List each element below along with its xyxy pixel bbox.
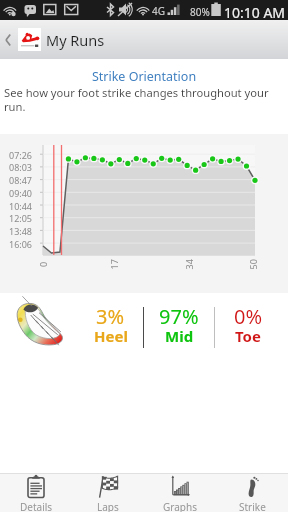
staticText: Details <box>20 500 53 512</box>
button[interactable]: Graphs <box>144 473 216 512</box>
staticText: Mid <box>165 326 194 346</box>
staticText: 0% <box>234 303 263 330</box>
staticText: 10:10 AM <box>224 3 286 22</box>
staticText: 17 <box>107 258 119 269</box>
staticText: 3% <box>96 303 125 330</box>
staticText: 16:06 <box>9 238 33 250</box>
staticText: See how your foot strike changes through… <box>4 85 278 115</box>
staticText: 34 <box>182 258 194 269</box>
staticText: 10:44 <box>9 200 33 212</box>
staticText: 08:47 <box>9 174 33 186</box>
staticText: 12:05 <box>9 212 33 224</box>
staticText: Laps <box>97 500 119 512</box>
staticText: 80% <box>190 5 210 19</box>
button[interactable]: 0% <box>215 294 281 350</box>
staticText: Toe <box>235 326 261 346</box>
staticText: Strike <box>239 500 266 512</box>
staticText: 08:03 <box>9 161 33 173</box>
button[interactable]: 97% <box>144 294 214 350</box>
staticText: 07:26 <box>9 149 33 161</box>
button[interactable]: Laps <box>72 473 144 512</box>
staticText: Strike Orientation <box>0 68 288 85</box>
staticText: My Runs <box>46 30 105 50</box>
staticText: 50 <box>246 258 258 269</box>
staticText: 0 <box>37 261 49 267</box>
staticText: Graphs <box>163 500 197 512</box>
staticText: Heel <box>94 326 128 346</box>
staticText: 13:48 <box>9 225 33 237</box>
button[interactable]: Details <box>0 473 72 512</box>
button[interactable]: 3% <box>78 294 143 350</box>
button[interactable]: Back <box>0 20 16 59</box>
staticText: 4G <box>152 4 165 18</box>
staticText: 97% <box>159 303 199 330</box>
button[interactable]: Strike <box>216 473 288 512</box>
staticText: 09:40 <box>9 187 33 199</box>
